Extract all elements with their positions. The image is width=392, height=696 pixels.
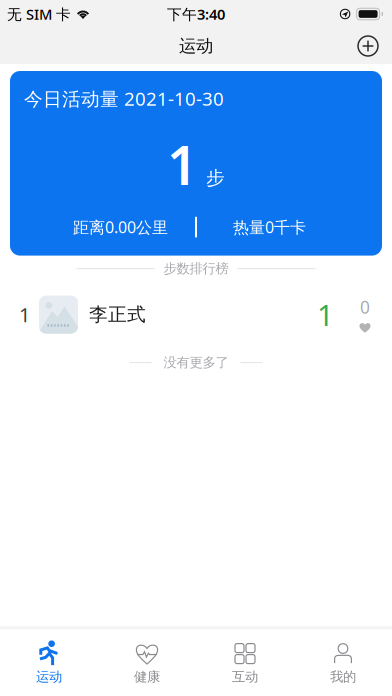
staticText: 步数排行榜 xyxy=(163,260,228,277)
staticText: 热量0千卡 xyxy=(233,216,306,238)
button[interactable]: 我的 xyxy=(294,630,392,696)
staticText: 无 SIM 卡 xyxy=(7,4,71,24)
staticText: 我的 xyxy=(330,669,356,685)
staticText: 运动 xyxy=(36,669,62,685)
staticText: 互动 xyxy=(232,669,258,685)
staticText: 运动 xyxy=(179,35,213,57)
staticText: 1 xyxy=(167,129,198,200)
button[interactable]: 互动 xyxy=(196,630,294,696)
button[interactable]: 健康 xyxy=(98,630,196,696)
staticText: 下午3:40 xyxy=(167,4,225,24)
staticText: 1 xyxy=(317,295,334,334)
staticText: 健康 xyxy=(134,669,160,685)
staticText: 1 xyxy=(19,301,30,328)
staticText: 李正式 xyxy=(89,303,146,326)
button[interactable]: 运动 xyxy=(0,630,98,696)
staticText: 没有更多了 xyxy=(163,354,228,371)
button[interactable]: 1 xyxy=(0,291,392,339)
button[interactable]: 添加 xyxy=(344,28,392,64)
staticText: 距离0.00公里 xyxy=(73,216,168,238)
staticText: 步 xyxy=(206,167,225,190)
staticText: 今日活动量 2021-10-30 xyxy=(24,86,224,111)
staticText: 0 xyxy=(360,296,370,319)
